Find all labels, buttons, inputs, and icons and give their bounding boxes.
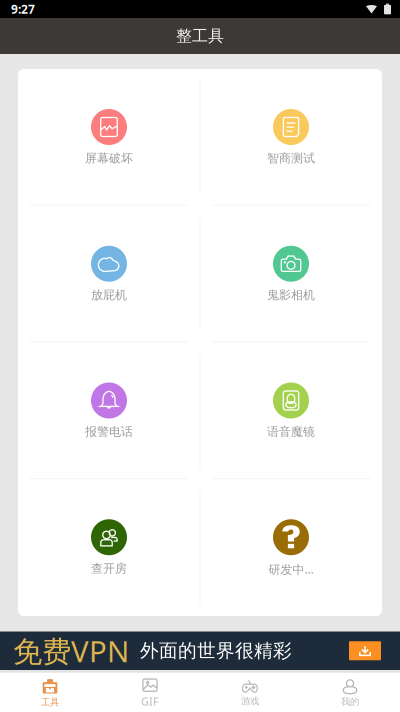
button[interactable]: 放屁机 <box>18 206 200 343</box>
button[interactable]: 研发中... <box>200 479 382 616</box>
button[interactable]: 鬼影相机 <box>200 206 382 343</box>
staticText: 研发中... <box>268 561 313 577</box>
staticText: 放屁机 <box>91 288 127 302</box>
button[interactable]: 报警电话 <box>18 342 200 479</box>
button[interactable]: 我的 <box>300 673 400 712</box>
staticText: 智商测试 <box>267 151 315 166</box>
button[interactable]: 语音魔镜 <box>200 342 382 479</box>
button[interactable]: 工具 <box>0 673 100 712</box>
staticText: 免费VPN <box>13 631 129 670</box>
staticText: GIF <box>141 694 159 708</box>
button[interactable]: 查开房 <box>18 479 200 616</box>
button[interactable]: GIF <box>100 673 200 712</box>
staticText: 9:27 <box>11 1 35 17</box>
staticText: 报警电话 <box>85 424 133 439</box>
staticText: 游戏 <box>241 695 259 707</box>
staticText: 外面的世界很精彩 <box>140 639 292 662</box>
button[interactable]: 游戏 <box>200 673 300 712</box>
staticText: 工具 <box>41 696 59 708</box>
button[interactable]: 智商测试 <box>200 69 382 206</box>
staticText: 查开房 <box>91 561 127 576</box>
button[interactable]: 屏幕破坏 <box>18 69 200 206</box>
staticText: 整工具 <box>176 26 224 46</box>
staticText: 我的 <box>341 696 359 707</box>
button[interactable]: 免费VPN <box>0 631 400 670</box>
staticText: 语音魔镜 <box>267 424 315 439</box>
staticText: 鬼影相机 <box>267 288 315 302</box>
staticText: 屏幕破坏 <box>85 151 133 166</box>
